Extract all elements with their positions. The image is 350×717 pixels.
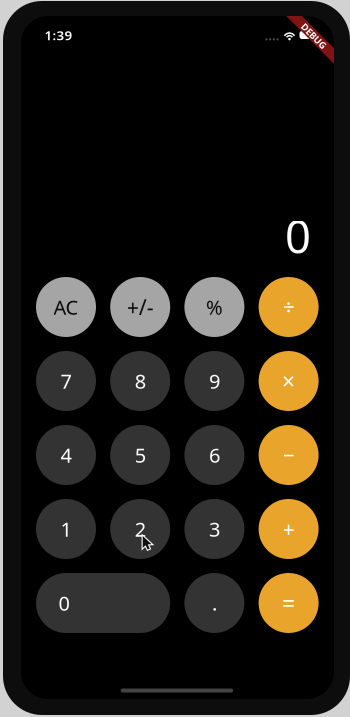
button[interactable]: 0 <box>36 573 170 633</box>
button[interactable]: = <box>259 573 319 633</box>
staticText: % <box>206 294 223 320</box>
staticText: 3 <box>209 516 220 542</box>
staticText: 8 <box>135 368 146 394</box>
button[interactable]: 4 <box>36 425 96 485</box>
staticText: 1:39 <box>44 26 72 44</box>
button[interactable]: 8 <box>110 351 170 411</box>
staticText: − <box>283 441 295 469</box>
button[interactable]: ÷ <box>259 277 319 337</box>
staticText: 0 <box>285 206 311 266</box>
button[interactable]: + <box>259 499 319 559</box>
button[interactable]: 5 <box>110 425 170 485</box>
staticText: AC <box>53 294 78 320</box>
button[interactable]: % <box>184 277 244 337</box>
staticText: . <box>212 590 217 616</box>
staticText: 7 <box>60 368 71 394</box>
staticText: = <box>282 588 295 618</box>
staticText: 1 <box>60 516 71 542</box>
staticText: ÷ <box>283 293 295 321</box>
button[interactable]: . <box>184 573 244 633</box>
button[interactable]: 7 <box>36 351 96 411</box>
button[interactable]: × <box>259 351 319 411</box>
button[interactable]: 3 <box>184 499 244 559</box>
staticText: 5 <box>135 442 146 468</box>
button[interactable]: − <box>259 425 319 485</box>
button[interactable]: 6 <box>184 425 244 485</box>
button[interactable]: +/- <box>110 277 170 337</box>
button[interactable]: 1 <box>36 499 96 559</box>
staticText: +/- <box>127 293 154 321</box>
button[interactable]: 2 <box>110 499 170 559</box>
staticText: DEBUG <box>298 30 330 42</box>
button[interactable]: 9 <box>184 351 244 411</box>
staticText: 4 <box>60 442 71 468</box>
staticText: 0 <box>58 590 69 616</box>
staticText: 6 <box>209 442 220 468</box>
staticText: 9 <box>209 368 220 394</box>
staticText: + <box>283 515 295 543</box>
staticText: × <box>282 366 295 396</box>
staticText: 2 <box>135 516 146 542</box>
button[interactable]: AC <box>36 277 96 337</box>
